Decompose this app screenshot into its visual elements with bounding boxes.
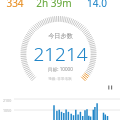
staticText: 334 [6,0,24,7]
staticText: 目标: 10000 [48,66,73,72]
staticText: 14.0 [87,0,107,7]
staticText: 2100 [3,98,12,103]
staticText: 2h 39m [36,0,72,7]
button[interactable]: 334 [0,0,35,7]
staticText: 21214 [33,41,88,67]
staticText: 等级: 非常活跃 [48,76,72,81]
button[interactable]: 14.0 [77,0,117,7]
button[interactable]: 2h 39m [34,0,74,7]
button[interactable]: Pause [107,84,115,92]
staticText: 今日步数 [48,32,73,40]
staticText: 1050 [3,108,12,113]
